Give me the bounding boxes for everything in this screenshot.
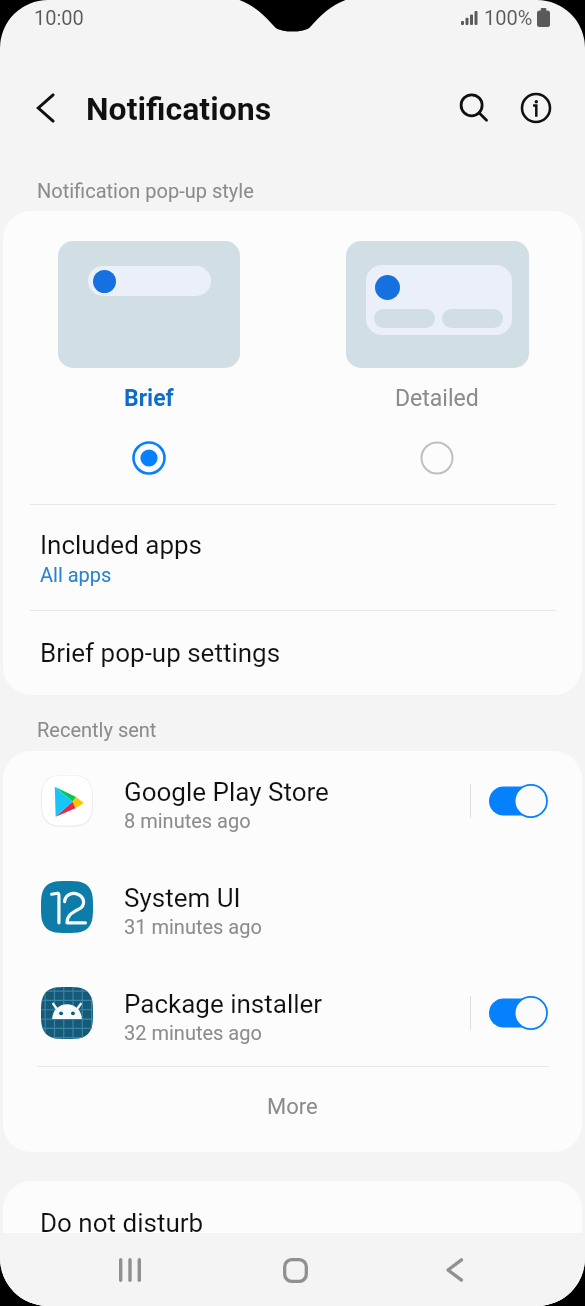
button[interactable]: Included apps [3, 505, 582, 610]
staticText: 10:00 [34, 6, 84, 29]
button[interactable]: Information [502, 74, 570, 142]
staticText: Detailed [395, 385, 479, 412]
button[interactable]: Home [255, 1241, 335, 1299]
staticText: Included apps [40, 530, 203, 560]
button[interactable]: Google Play Store [3, 771, 582, 831]
button[interactable]: Toggle Google Play Store notifications [489, 784, 548, 818]
staticText: Google Play Store [124, 777, 329, 807]
staticText: Do not disturb [40, 1208, 204, 1238]
button[interactable]: Brief [36, 236, 262, 501]
staticText: 8 minutes ago [124, 809, 251, 832]
staticText: More [267, 1094, 318, 1120]
staticText: 32 minutes ago [124, 1021, 262, 1044]
button[interactable]: Search [440, 74, 508, 142]
staticText: 31 minutes ago [124, 915, 262, 938]
button[interactable]: Recent apps [91, 1241, 171, 1299]
staticText: Recently sent [37, 718, 157, 741]
button[interactable]: Package installer [3, 983, 582, 1043]
button[interactable]: Detailed [325, 236, 549, 501]
button[interactable]: Navigate up [13, 74, 81, 142]
staticText: Brief pop-up settings [40, 638, 281, 668]
button[interactable]: Back [419, 1241, 499, 1299]
button[interactable]: System UI [3, 877, 582, 937]
button[interactable]: More [3, 1067, 582, 1152]
staticText: 100% [484, 6, 533, 29]
button[interactable]: Brief pop-up settings [3, 611, 582, 695]
staticText: Notifications [86, 90, 272, 128]
staticText: Notification pop-up style [37, 179, 254, 202]
staticText: System UI [124, 883, 241, 913]
staticText: Package installer [124, 989, 323, 1019]
staticText: Brief [124, 385, 174, 412]
staticText: All apps [40, 563, 112, 586]
button[interactable]: Toggle Package installer notifications [489, 996, 548, 1030]
